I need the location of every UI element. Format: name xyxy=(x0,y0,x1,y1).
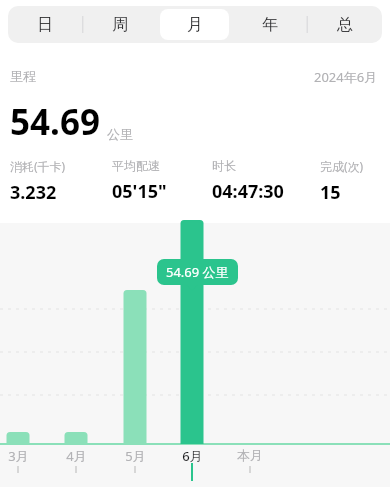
staticText: 时长 xyxy=(212,158,236,173)
button[interactable]: 周 xyxy=(85,9,154,40)
button[interactable]: 54.69 公里 xyxy=(166,263,229,281)
button[interactable]: 日 xyxy=(11,9,79,40)
staticText: 消耗(千卡) xyxy=(10,158,66,174)
staticText: 总 xyxy=(337,15,353,35)
staticText: 公里 xyxy=(107,126,133,142)
button[interactable]: 4月 xyxy=(56,447,96,465)
staticText: 05'15" xyxy=(112,179,167,204)
staticText: 54.69 xyxy=(10,98,100,146)
staticText: 月 xyxy=(187,15,203,35)
staticText: 3月 xyxy=(8,447,29,465)
staticText: 完成(次) xyxy=(320,158,364,174)
button[interactable]: 本月 xyxy=(230,447,270,463)
button[interactable]: 总 xyxy=(310,9,379,40)
button[interactable]: 3月 xyxy=(0,447,38,465)
staticText: 2024年6月 xyxy=(314,68,378,86)
staticText: 15 xyxy=(320,180,341,205)
staticText: 54.69 公里 xyxy=(166,263,229,281)
staticText: 04:47:30 xyxy=(212,179,284,204)
button[interactable]: 6月 xyxy=(172,447,212,465)
button[interactable]: 5月 xyxy=(115,447,155,465)
button[interactable]: 月 xyxy=(160,9,229,40)
staticText: 3.232 xyxy=(10,180,57,205)
staticText: 年 xyxy=(262,15,278,35)
staticText: 平均配速 xyxy=(112,158,160,173)
staticText: 里程 xyxy=(10,68,36,84)
button[interactable]: 年 xyxy=(235,9,304,40)
staticText: 周 xyxy=(112,15,128,35)
staticText: 4月 xyxy=(66,447,87,465)
staticText: 日 xyxy=(37,15,53,35)
staticText: 本月 xyxy=(237,447,263,463)
staticText: 5月 xyxy=(125,447,146,465)
staticText: 6月 xyxy=(182,447,203,465)
